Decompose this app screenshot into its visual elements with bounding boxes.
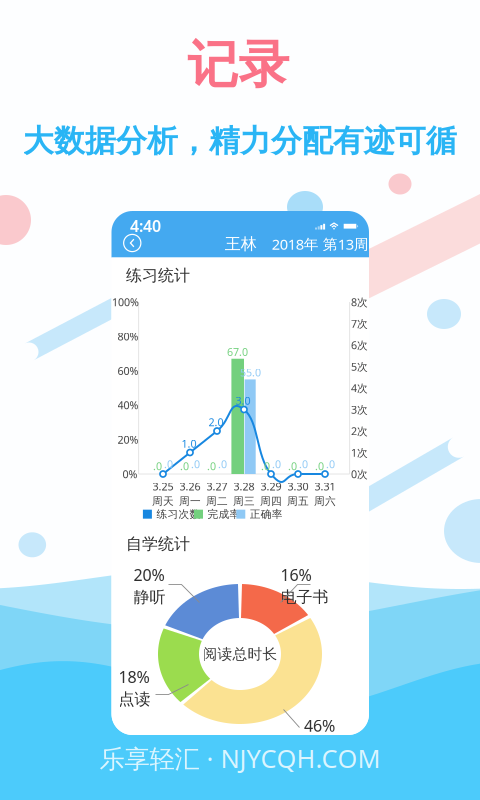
staticText: 46% xyxy=(304,715,335,736)
staticText: 4:40 xyxy=(130,215,161,236)
staticText: 3.31 xyxy=(314,479,335,494)
staticText: 记录 xyxy=(187,34,289,96)
staticText: 完成率 xyxy=(207,508,240,521)
staticText: .0 xyxy=(164,457,173,471)
staticText: 1.0 xyxy=(181,436,196,451)
staticText: .0 xyxy=(326,457,335,471)
staticText: 3次 xyxy=(351,402,368,417)
staticText: 阅读总时长 xyxy=(202,645,277,663)
staticText: 练习次数 xyxy=(156,508,200,521)
staticText: 3.29 xyxy=(260,479,281,494)
staticText: 3.25 xyxy=(152,479,173,494)
staticText: 2018年 第13周 xyxy=(272,234,369,254)
staticText: 8次 xyxy=(351,295,368,309)
staticText: 100% xyxy=(112,295,139,309)
staticText: 18% xyxy=(118,666,149,687)
staticText: 3.0 xyxy=(235,393,250,408)
staticText: 67.0 xyxy=(227,345,248,359)
staticText: .0 xyxy=(191,457,200,471)
staticText: 0% xyxy=(122,467,137,481)
staticText: 20% xyxy=(133,564,164,585)
staticText: 练习统计 xyxy=(126,266,190,285)
staticText: .0 xyxy=(272,457,281,471)
staticText: 20% xyxy=(117,432,138,447)
staticText: .0 xyxy=(299,457,308,471)
staticText: 乐享轻汇 · NJYCQH.COM xyxy=(99,741,380,775)
staticText: .0 xyxy=(180,459,189,473)
staticText: 3.27 xyxy=(206,479,227,494)
staticText: 周二 xyxy=(206,494,228,508)
staticText: .0 xyxy=(153,459,162,473)
staticText: 40% xyxy=(117,398,138,412)
staticText: 16% xyxy=(280,564,311,585)
staticText: 7次 xyxy=(351,316,368,331)
staticText: 6次 xyxy=(351,338,368,352)
staticText: .0 xyxy=(207,459,216,473)
staticText: 周一 xyxy=(179,494,201,508)
staticText: 周六 xyxy=(314,494,336,508)
staticText: 0次 xyxy=(351,467,368,481)
staticText: 2次 xyxy=(351,424,368,438)
button[interactable]: Back xyxy=(122,233,142,253)
staticText: 大数据分析，精力分配有迹可循 xyxy=(23,122,457,160)
staticText: 周四 xyxy=(260,494,282,508)
staticText: 60% xyxy=(117,364,138,378)
staticText: 2.0 xyxy=(208,415,223,429)
staticText: 正确率 xyxy=(250,508,283,521)
staticText: 自学统计 xyxy=(126,534,190,554)
staticText: .0 xyxy=(288,459,297,473)
staticText: 55.0 xyxy=(240,365,261,379)
staticText: .0 xyxy=(261,459,270,473)
staticText: 静听 xyxy=(133,587,165,607)
staticText: 3.30 xyxy=(287,479,308,494)
staticText: .0 xyxy=(315,459,324,473)
staticText: 周天 xyxy=(152,494,174,508)
staticText: .0 xyxy=(218,457,227,471)
staticText: 80% xyxy=(117,329,138,343)
staticText: 3.28 xyxy=(233,479,254,494)
staticText: 电子书 xyxy=(280,587,328,607)
staticText: 周五 xyxy=(287,494,309,508)
staticText: 周三 xyxy=(233,494,255,508)
staticText: 3.26 xyxy=(179,479,200,494)
staticText: 王林 xyxy=(225,234,257,254)
staticText: 1次 xyxy=(351,445,368,460)
staticText: 点读 xyxy=(118,689,150,709)
staticText: 4次 xyxy=(351,381,368,395)
staticText: 5次 xyxy=(351,359,368,374)
